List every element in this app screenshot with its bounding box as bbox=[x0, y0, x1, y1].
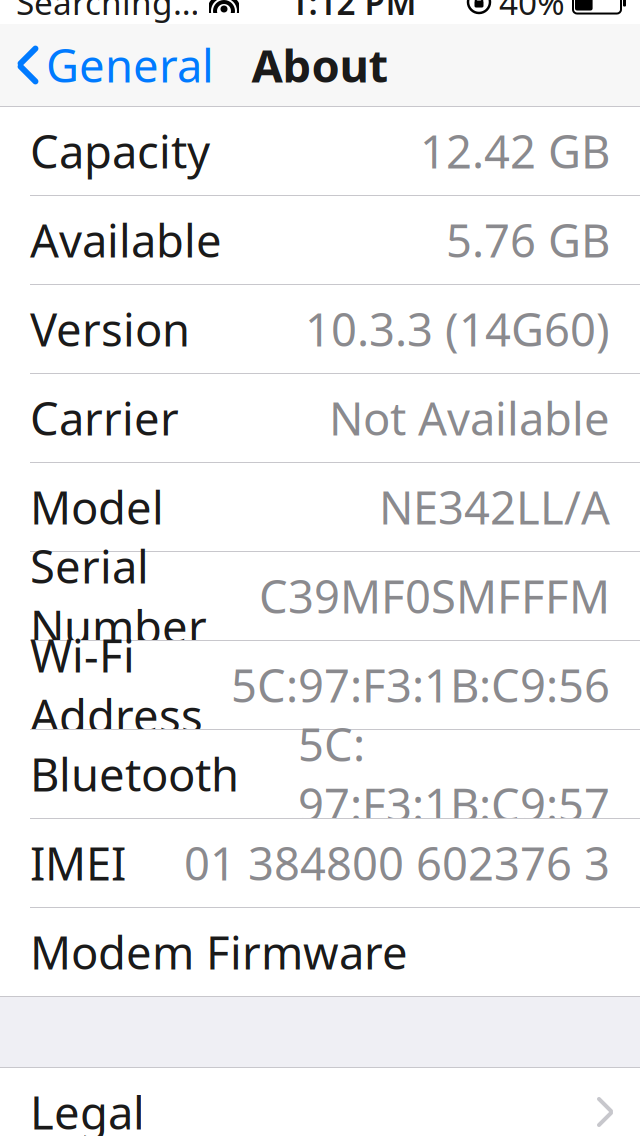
staticText: About bbox=[251, 35, 388, 95]
staticText: IMEI bbox=[30, 833, 126, 893]
button[interactable]: Capacity bbox=[0, 107, 640, 195]
button[interactable]: Modem Firmware bbox=[0, 908, 640, 996]
button[interactable]: Serial Number bbox=[0, 552, 640, 640]
staticText: Modem Firmware bbox=[30, 922, 408, 982]
button[interactable]: Bluetooth bbox=[0, 730, 640, 818]
button[interactable]: Legal bbox=[0, 1068, 640, 1136]
staticText: Model bbox=[30, 477, 164, 537]
staticText: Searching… bbox=[16, 0, 199, 24]
staticText: Not Available bbox=[329, 388, 610, 448]
staticText: 5C:97:F3:1B:C9:56 bbox=[231, 655, 610, 715]
staticText: 5.76 GB bbox=[446, 210, 610, 270]
staticText: Bluetooth bbox=[30, 744, 239, 804]
button[interactable]: Model bbox=[0, 463, 640, 551]
staticText: 01 384800 602376 3 bbox=[184, 833, 610, 893]
staticText: Version bbox=[30, 299, 190, 359]
staticText: 5C:97:F3:1B:C9:57 bbox=[298, 714, 610, 834]
staticText: 40% bbox=[499, 0, 565, 24]
staticText: 10.3.3 (14G60) bbox=[305, 299, 610, 359]
staticText: NE342LL/A bbox=[379, 477, 610, 537]
button[interactable]: Wi-Fi Address bbox=[0, 641, 640, 729]
button[interactable]: Carrier bbox=[0, 374, 640, 462]
button[interactable]: IMEI bbox=[0, 819, 640, 907]
staticText: Available bbox=[30, 210, 222, 270]
staticText: Legal bbox=[30, 1082, 145, 1136]
button[interactable]: General bbox=[0, 27, 214, 103]
button[interactable]: Available bbox=[0, 196, 640, 284]
staticText: Wi-Fi Address bbox=[30, 625, 203, 745]
staticText: Capacity bbox=[30, 121, 210, 181]
button[interactable]: Version bbox=[0, 285, 640, 373]
staticText: C39MF0SMFFFM bbox=[259, 566, 610, 626]
staticText: 12.42 GB bbox=[420, 121, 610, 181]
staticText: 1:12 PM bbox=[289, 0, 416, 24]
staticText: General bbox=[46, 35, 214, 95]
staticText: Carrier bbox=[30, 388, 179, 448]
staticText: Serial Number bbox=[30, 536, 207, 656]
